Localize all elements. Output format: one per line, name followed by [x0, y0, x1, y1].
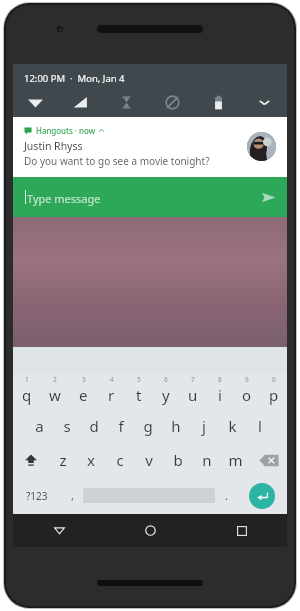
button[interactable]: 7 [179, 374, 206, 409]
button[interactable]: 2 [41, 374, 69, 409]
staticText: 9 [245, 375, 249, 384]
button[interactable]: 8 [206, 374, 233, 409]
staticText: d [89, 416, 99, 436]
button[interactable]: ?123 [13, 477, 61, 514]
staticText: 6 [164, 375, 168, 384]
staticText: Justin Rhyss [24, 139, 83, 153]
button[interactable]: d [80, 409, 107, 443]
button[interactable]: f [107, 409, 134, 443]
staticText: o [242, 385, 252, 405]
staticText: 3 [82, 375, 86, 384]
staticText: v [145, 450, 153, 470]
button[interactable]: Hangouts · now [13, 117, 287, 177]
button[interactable]: n [192, 443, 221, 477]
staticText: , [71, 488, 74, 503]
staticText: 0 [272, 375, 276, 384]
staticText: 7 [191, 375, 195, 384]
button[interactable]: 3 [69, 374, 97, 409]
button[interactable]: a [26, 409, 53, 443]
staticText: n [202, 450, 212, 470]
staticText: 8 [218, 375, 222, 384]
staticText: t [136, 385, 142, 405]
button[interactable]: Backspace [250, 443, 287, 477]
button[interactable]: 4 [97, 374, 125, 409]
button[interactable]: Type message [13, 177, 287, 217]
button[interactable]: s [53, 409, 80, 443]
button[interactable]: x [77, 443, 105, 477]
staticText: . [225, 488, 228, 503]
staticText: 1 [25, 375, 29, 384]
button[interactable]: Expand quick settings [241, 90, 287, 114]
button[interactable]: 1 [13, 374, 41, 409]
staticText: a [35, 416, 44, 436]
button[interactable]: 0 [260, 374, 287, 409]
staticText: l [258, 416, 262, 436]
staticText: f [118, 416, 124, 436]
button[interactable]: Back [13, 514, 105, 547]
button[interactable]: j [190, 409, 218, 443]
staticText: c [116, 450, 124, 470]
button[interactable]: , [61, 477, 83, 514]
staticText: b [173, 450, 183, 470]
staticText: 2 [53, 375, 57, 384]
button[interactable]: Recent apps [196, 514, 287, 547]
button[interactable]: . [215, 477, 237, 514]
staticText: y [162, 385, 170, 405]
staticText: w [49, 385, 61, 405]
staticText: p [269, 385, 279, 405]
button[interactable]: 6 [152, 374, 179, 409]
button[interactable]: b [163, 443, 192, 477]
staticText: z [59, 450, 67, 470]
button[interactable]: Battery [195, 90, 241, 114]
button[interactable]: Send [257, 186, 279, 208]
staticText: h [171, 416, 181, 436]
button[interactable]: c [105, 443, 134, 477]
staticText: s [63, 416, 71, 436]
staticText: g [143, 416, 153, 436]
button[interactable]: k [218, 409, 246, 443]
staticText: u [188, 385, 198, 405]
button[interactable]: Mobile signal [58, 90, 103, 114]
staticText: r [108, 385, 115, 405]
staticText: k [228, 416, 237, 436]
staticText: j [202, 416, 206, 436]
staticText: Type message [27, 191, 101, 206]
staticText: q [22, 385, 32, 405]
staticText: 4 [110, 375, 114, 384]
button[interactable]: m [221, 443, 250, 477]
staticText: Hangouts · now [36, 125, 95, 136]
button[interactable]: Wi-Fi [13, 90, 58, 114]
staticText: i [218, 385, 222, 405]
staticText: 5 [137, 375, 141, 384]
staticText: ?123 [26, 489, 48, 503]
button[interactable]: z [49, 443, 77, 477]
button[interactable]: l [246, 409, 274, 443]
button[interactable]: Home [105, 514, 196, 547]
button[interactable]: Alarm [103, 90, 149, 114]
staticText: 12:00 PM · Mon, Jan 4 [24, 72, 125, 85]
button[interactable]: Shift [13, 443, 49, 477]
staticText: Do you want to go see a movie tonight? [24, 154, 210, 168]
button[interactable]: h [162, 409, 190, 443]
button[interactable]: v [134, 443, 163, 477]
staticText: e [79, 385, 88, 405]
button[interactable]: g [134, 409, 162, 443]
staticText: m [228, 450, 243, 470]
button[interactable]: Enter [249, 483, 275, 509]
button[interactable]: Do not disturb [149, 90, 195, 114]
button[interactable]: 9 [233, 374, 260, 409]
button[interactable]: 5 [125, 374, 152, 409]
staticText: x [87, 450, 95, 470]
